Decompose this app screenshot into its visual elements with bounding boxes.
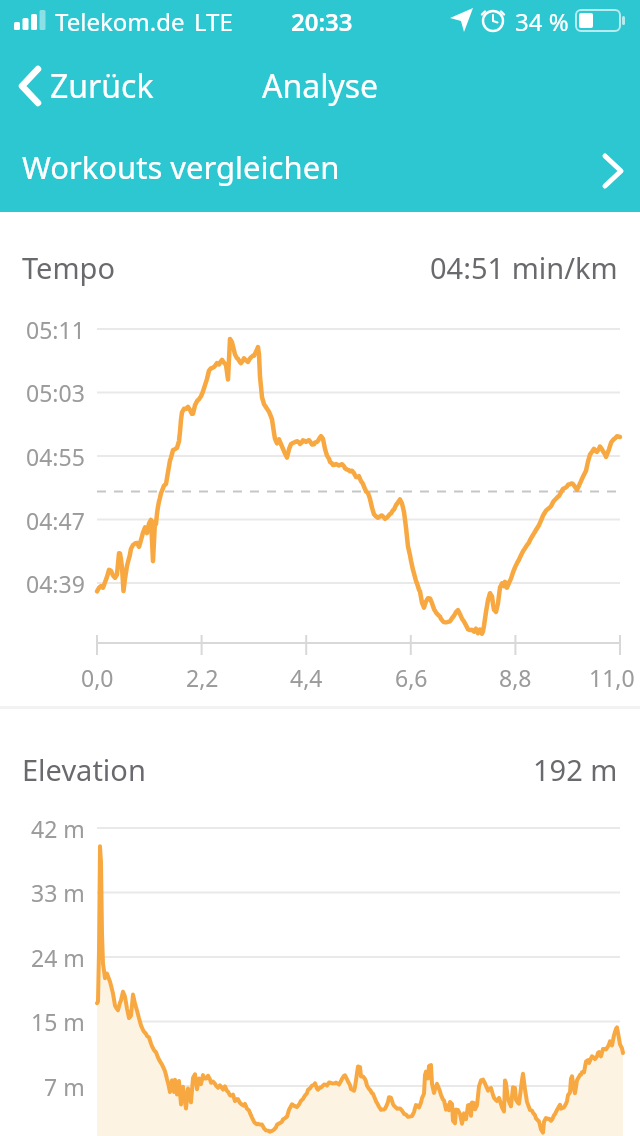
staticText: Tempo bbox=[22, 248, 115, 287]
staticText: 7 m bbox=[44, 1071, 85, 1102]
staticText: 05:03 bbox=[26, 377, 85, 408]
staticText: Zurück bbox=[50, 64, 154, 108]
staticText: 04:47 bbox=[26, 505, 85, 536]
staticText: 04:39 bbox=[26, 568, 85, 599]
staticText: 15 m bbox=[31, 1006, 85, 1037]
staticText: Telekom.de bbox=[55, 5, 185, 38]
staticText: Elevation bbox=[22, 750, 146, 789]
staticText: 11,0 bbox=[589, 662, 635, 693]
staticText: 20:33 bbox=[291, 5, 353, 38]
button[interactable] bbox=[14, 60, 174, 112]
staticText: 42 m bbox=[31, 813, 85, 844]
staticText: 33 m bbox=[31, 877, 85, 908]
staticText: 0,0 bbox=[81, 662, 114, 693]
staticText: 34 % bbox=[515, 5, 569, 38]
staticText: 4,4 bbox=[290, 662, 323, 693]
staticText: 24 m bbox=[31, 942, 85, 973]
staticText: 8,8 bbox=[499, 662, 532, 693]
staticText: Analyse bbox=[262, 64, 379, 108]
staticText: LTE bbox=[194, 5, 233, 38]
staticText: 04:51 min/km bbox=[430, 248, 618, 287]
button[interactable] bbox=[0, 130, 640, 212]
staticText: 05:11 bbox=[26, 314, 85, 345]
staticText: 192 m bbox=[533, 750, 618, 789]
staticText: Workouts vergleichen bbox=[22, 146, 340, 188]
staticText: 6,6 bbox=[395, 662, 428, 693]
staticText: 04:55 bbox=[26, 441, 85, 472]
staticText: 2,2 bbox=[186, 662, 219, 693]
